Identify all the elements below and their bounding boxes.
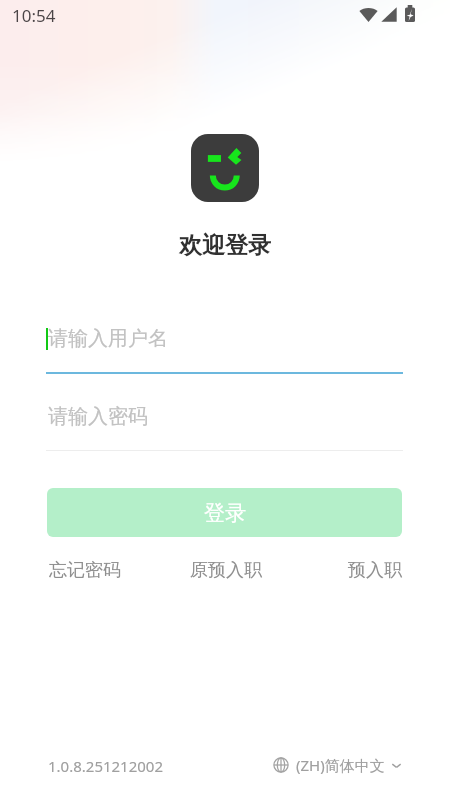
- staticText: 原预入职: [190, 559, 262, 582]
- button[interactable]: Change language: [273, 755, 402, 775]
- staticText: 1.0.8.251212002: [48, 756, 164, 776]
- button[interactable]: 原预入职: [182, 551, 270, 590]
- button[interactable]: 请输入密码: [46, 398, 403, 452]
- button[interactable]: 忘记密码: [41, 551, 129, 590]
- staticText: (ZH)简体中文: [296, 755, 385, 775]
- other: App logo: [191, 134, 259, 202]
- button[interactable]: 登录: [47, 488, 402, 537]
- staticText: 10:54: [12, 4, 56, 27]
- staticText: 请输入用户名: [48, 326, 168, 351]
- staticText: 请输入密码: [48, 404, 148, 429]
- staticText: 登录: [204, 500, 246, 526]
- staticText: 忘记密码: [49, 559, 121, 582]
- button[interactable]: 预入职: [340, 551, 410, 590]
- staticText: 预入职: [348, 559, 402, 582]
- button[interactable]: 请输入用户名: [46, 320, 403, 374]
- staticText: 欢迎登录: [0, 231, 450, 260]
